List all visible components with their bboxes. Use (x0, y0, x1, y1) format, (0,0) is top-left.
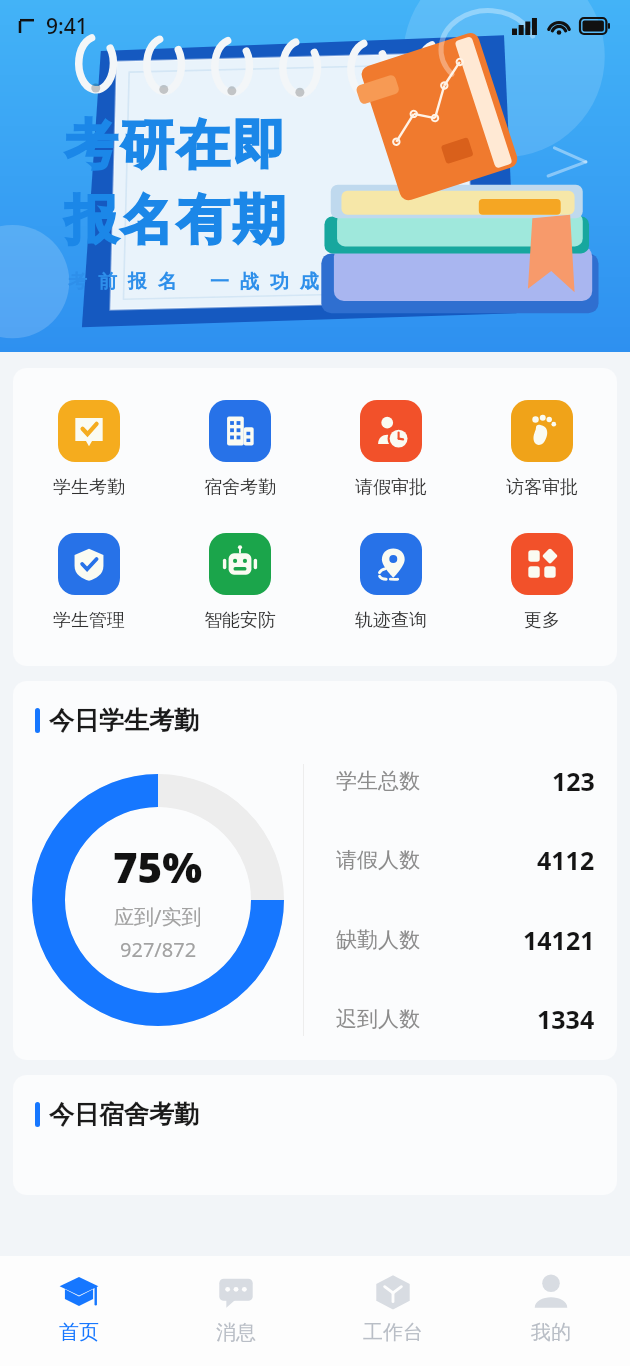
staticText: 考 前 报 名 (68, 268, 180, 294)
staticText: 一 战 功 成 (210, 268, 322, 294)
button[interactable]: 轨迹查询 (315, 529, 466, 636)
other: 消息 (214, 1270, 258, 1314)
button[interactable]: 请假审批 (315, 396, 466, 503)
staticText: 927/872 (120, 936, 197, 963)
staticText: 请假审批 (355, 476, 427, 499)
button[interactable]: 智能安防 (164, 529, 315, 636)
staticText: 1334 (537, 1002, 595, 1036)
button[interactable]: 学生管理 (13, 529, 164, 636)
staticText: 应到/实到 (114, 903, 202, 930)
staticText: 缺勤人数 (336, 927, 420, 953)
staticText: 首页 (59, 1320, 99, 1345)
button[interactable]: 我的 (472, 1256, 630, 1366)
staticText: 消息 (216, 1320, 256, 1345)
button[interactable]: 更多 (466, 529, 617, 636)
staticText: 学生总数 (336, 768, 420, 794)
staticText: 今日学生考勤 (49, 705, 199, 736)
button[interactable]: 宿舍考勤 (164, 396, 315, 503)
staticText: 迟到人数 (336, 1006, 420, 1032)
staticText: 75% (113, 838, 203, 895)
staticText: 学生管理 (53, 609, 125, 632)
staticText: 智能安防 (204, 609, 276, 632)
staticText: 更多 (524, 609, 560, 632)
staticText: 我的 (531, 1320, 571, 1345)
other: 工作台 (371, 1270, 415, 1314)
button[interactable]: 消息 (157, 1256, 314, 1366)
staticText: 报名有期 (63, 187, 287, 254)
staticText: 轨迹查询 (355, 609, 427, 632)
other: 首页 (57, 1270, 101, 1314)
staticText: 考研在即 (63, 112, 287, 179)
other: 我的 (529, 1270, 573, 1314)
staticText: 9:41 (46, 12, 88, 41)
button[interactable]: 工作台 (314, 1256, 472, 1366)
staticText: 14121 (523, 923, 595, 957)
staticText: 访客审批 (506, 476, 578, 499)
staticText: 学生考勤 (53, 476, 125, 499)
staticText: 请假人数 (336, 847, 420, 873)
button[interactable]: 学生考勤 (13, 396, 164, 503)
button[interactable]: 访客审批 (466, 396, 617, 503)
staticText: 工作台 (363, 1320, 423, 1345)
staticText: 123 (552, 764, 595, 798)
staticText: 4112 (537, 843, 595, 877)
staticText: 今日宿舍考勤 (49, 1099, 199, 1130)
staticText: 宿舍考勤 (204, 476, 276, 499)
button[interactable]: 首页 (0, 1256, 157, 1366)
